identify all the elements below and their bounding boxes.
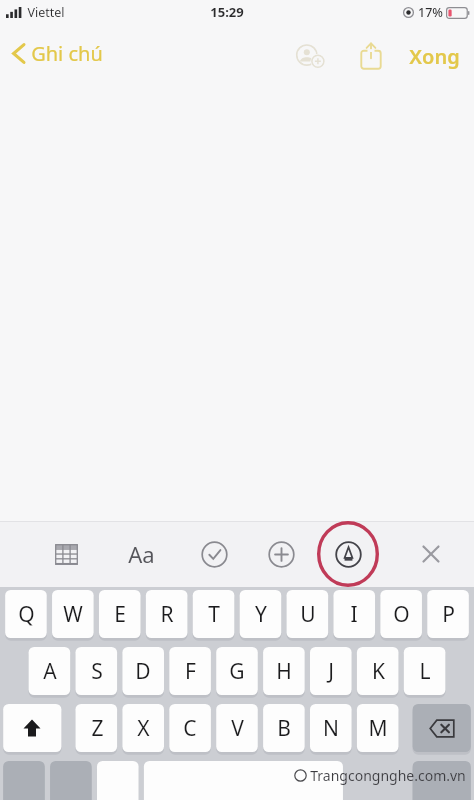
- staticText: Trangcongnghe.com.vn: [310, 766, 466, 785]
- staticText: Aa: [128, 539, 155, 569]
- staticText: Viettel: [27, 4, 65, 21]
- staticText: S: [91, 657, 103, 686]
- button[interactable]: K: [357, 647, 399, 695]
- button[interactable]: Q: [5, 590, 47, 638]
- staticText: R: [160, 600, 174, 629]
- button[interactable]: C: [169, 704, 211, 752]
- button[interactable]: Insert: [259, 533, 303, 575]
- staticText: B: [277, 714, 291, 743]
- button[interactable]: I: [333, 590, 375, 638]
- button[interactable]: B: [263, 704, 305, 752]
- button[interactable]: J: [310, 647, 352, 695]
- button[interactable]: Table: [44, 533, 88, 575]
- button[interactable]: S: [76, 647, 118, 695]
- staticText: K: [372, 657, 385, 686]
- staticText: H: [276, 657, 292, 686]
- staticText: I: [350, 600, 358, 629]
- button[interactable]: E: [99, 590, 141, 638]
- staticText: V: [231, 714, 244, 743]
- button[interactable]: Close keyboard: [409, 533, 453, 575]
- button[interactable]: Xong: [401, 38, 468, 75]
- staticText: M: [368, 714, 388, 743]
- button[interactable]: Aa: [117, 534, 165, 574]
- button[interactable]: W: [52, 590, 94, 638]
- button[interactable]: Share: [349, 34, 393, 78]
- button[interactable]: M: [357, 704, 399, 752]
- button[interactable]: X: [122, 704, 164, 752]
- staticText: Q: [18, 600, 35, 629]
- button[interactable]: V: [216, 704, 258, 752]
- staticText: W: [63, 600, 83, 629]
- button[interactable]: T: [193, 590, 235, 638]
- staticText: P: [442, 600, 455, 629]
- button[interactable]: D: [122, 647, 164, 695]
- button[interactable]: Y: [240, 590, 282, 638]
- button[interactable]: Backspace: [413, 704, 471, 752]
- button[interactable]: Z: [76, 704, 118, 752]
- staticText: G: [229, 657, 245, 686]
- staticText: A: [43, 657, 57, 686]
- staticText: U: [300, 600, 316, 629]
- button[interactable]: O: [380, 590, 422, 638]
- staticText: L: [419, 657, 431, 686]
- button[interactable]: G: [216, 647, 258, 695]
- staticText: T: [208, 600, 220, 629]
- staticText: D: [135, 657, 151, 686]
- button[interactable]: R: [146, 590, 188, 638]
- button[interactable]: Shift: [3, 704, 61, 752]
- staticText: X: [137, 714, 150, 743]
- button[interactable]: A: [29, 647, 71, 695]
- button[interactable]: Markup: [326, 533, 370, 575]
- button[interactable]: F: [169, 647, 211, 695]
- button[interactable]: H: [263, 647, 305, 695]
- staticText: J: [328, 657, 334, 686]
- button[interactable]: Ghi chú: [0, 36, 113, 71]
- staticText: Z: [91, 714, 104, 743]
- button[interactable]: P: [427, 590, 469, 638]
- staticText: Y: [255, 600, 267, 629]
- staticText: Xong: [409, 43, 460, 70]
- button[interactable]: U: [287, 590, 329, 638]
- button[interactable]: Checklist: [192, 533, 236, 575]
- staticText: E: [114, 600, 126, 629]
- button[interactable]: L: [404, 647, 446, 695]
- staticText: O: [393, 600, 410, 629]
- staticText: 17%: [418, 4, 443, 21]
- button[interactable]: Add people: [289, 34, 333, 78]
- staticText: N: [323, 714, 339, 743]
- staticText: 15:29: [210, 3, 244, 21]
- staticText: Ghi chú: [31, 40, 103, 67]
- staticText: C: [183, 714, 197, 743]
- button[interactable]: N: [310, 704, 352, 752]
- staticText: F: [185, 657, 196, 686]
